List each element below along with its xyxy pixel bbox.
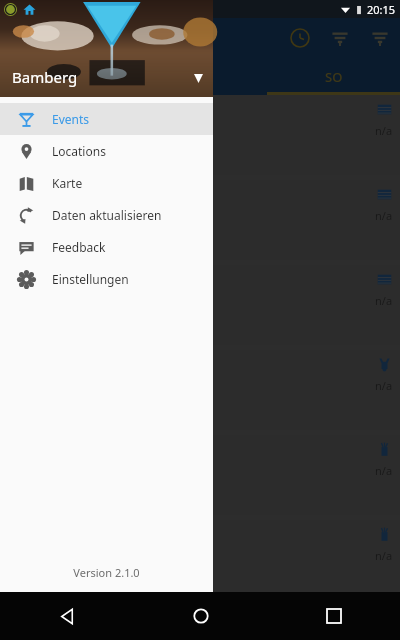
button[interactable]: Daten aktualisieren — [0, 199, 213, 231]
staticText: 20:15 — [367, 2, 396, 17]
staticText: Daten aktualisieren — [52, 207, 162, 223]
button[interactable]: n/a — [0, 350, 400, 430]
button[interactable]: n/a — [0, 520, 400, 592]
staticText: Events — [52, 111, 90, 127]
staticText: n/a — [375, 123, 393, 138]
staticText: n/a — [375, 293, 393, 308]
button[interactable]: n/a — [0, 95, 400, 175]
button[interactable]: Zurück — [0, 592, 134, 640]
staticText: Karte — [52, 175, 83, 191]
button[interactable]: Zeit — [280, 18, 320, 58]
button[interactable]: n/a — [0, 435, 400, 515]
staticText: n/a — [375, 548, 393, 563]
button[interactable]: Einstellungen — [0, 263, 213, 295]
button[interactable]: n/a — [0, 265, 400, 345]
button[interactable]: Übersicht — [267, 592, 400, 640]
button[interactable]: Stadt wählen: Bamberg — [0, 0, 213, 97]
staticText: n/a — [375, 463, 393, 478]
staticText: Version 2.1.0 — [73, 565, 140, 580]
staticText: FR — [59, 68, 75, 86]
button[interactable]: Filter — [360, 18, 400, 58]
staticText: Locations — [52, 143, 106, 159]
staticText: Feedback — [52, 239, 106, 255]
button[interactable]: Karte — [0, 167, 213, 199]
staticText: Einstellungen — [52, 271, 129, 287]
staticText: n/a — [375, 208, 393, 223]
button[interactable]: Sortieren — [320, 18, 360, 58]
staticText: n/a — [375, 378, 393, 393]
button[interactable]: FR — [0, 58, 134, 95]
button[interactable]: n/a — [0, 180, 400, 260]
button[interactable]: Events — [0, 103, 213, 135]
button[interactable]: Feedback — [0, 231, 213, 263]
button[interactable]: SA — [134, 58, 267, 95]
staticText: SA — [193, 68, 209, 86]
button[interactable]: Home — [134, 592, 267, 640]
staticText: SO — [325, 68, 343, 86]
button[interactable]: SO — [267, 58, 400, 95]
button[interactable]: Locations — [0, 135, 213, 167]
staticText: Bamberg — [12, 67, 78, 87]
